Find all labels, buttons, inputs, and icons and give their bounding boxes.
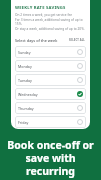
other: Friday [77,119,83,125]
other: Tuesday [77,77,83,83]
staticText: Friday [18,120,29,125]
other: Sunday [77,49,83,55]
staticText: For 3 times a week, additional saving of… [15,18,86,26]
staticText: Sunday [18,50,31,55]
staticText: Book once-off or save with recurring boo… [5,138,96,180]
staticText: WEEKLY RATE SAVINGS [15,5,66,11]
staticText: On 2 times a week, you get service fee [15,13,73,17]
other: Wednesday selected [77,91,83,97]
staticText: Select days of the week [15,38,58,43]
button[interactable]: Wednesday [15,88,86,100]
staticText: Or stay a week, additional saving of up … [15,27,85,31]
button[interactable]: Friday [15,116,86,128]
staticText: Thursday [18,106,34,111]
staticText: Tuesday [18,78,32,83]
button[interactable]: Thursday [15,102,86,114]
staticText: SELECT ALL [69,38,85,42]
button[interactable]: Sunday [15,46,86,58]
other: Thursday [77,105,83,111]
button[interactable]: Monday [15,60,86,72]
button[interactable]: Tuesday [15,74,86,86]
other: Monday [77,63,83,69]
button[interactable]: SELECT ALL [68,37,86,43]
staticText: Monday [18,64,32,69]
staticText: Wednesday [18,92,38,97]
